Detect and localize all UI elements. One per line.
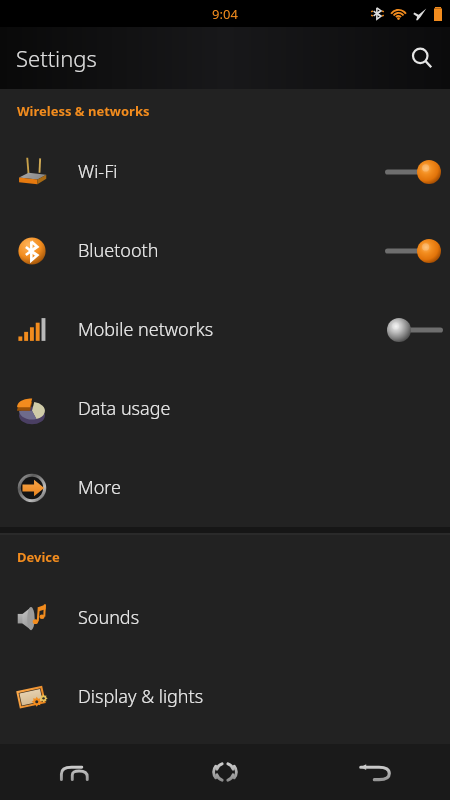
button[interactable]: Home: [150, 744, 300, 800]
staticText: Mobile networks: [78, 317, 378, 342]
button[interactable]: Back: [300, 744, 450, 800]
button[interactable]: Wi-Fi switch: [378, 148, 450, 196]
staticText: Data usage: [78, 396, 434, 421]
button[interactable]: Bluetooth switch: [378, 227, 450, 275]
button[interactable]: Search: [394, 30, 450, 86]
button[interactable]: Data usage: [0, 369, 450, 448]
staticText: Display & lights: [78, 684, 434, 709]
button[interactable]: Mobile networks: [0, 290, 450, 369]
staticText: Sounds: [78, 605, 434, 630]
button[interactable]: Bluetooth: [0, 211, 450, 290]
staticText: Settings: [16, 43, 97, 73]
staticText: Bluetooth: [78, 238, 378, 263]
button[interactable]: More: [0, 448, 450, 527]
staticText: More: [78, 475, 434, 500]
button[interactable]: Display & lights: [0, 657, 450, 736]
button[interactable]: Sounds: [0, 578, 450, 657]
button[interactable]: Mobile networks switch: [378, 306, 450, 354]
button[interactable]: Recent apps: [0, 744, 150, 800]
staticText: Device: [17, 548, 60, 566]
staticText: Wi-Fi: [78, 159, 378, 184]
staticText: 9:04: [212, 5, 238, 23]
button[interactable]: Wi-Fi: [0, 132, 450, 211]
staticText: Wireless & networks: [17, 102, 150, 120]
